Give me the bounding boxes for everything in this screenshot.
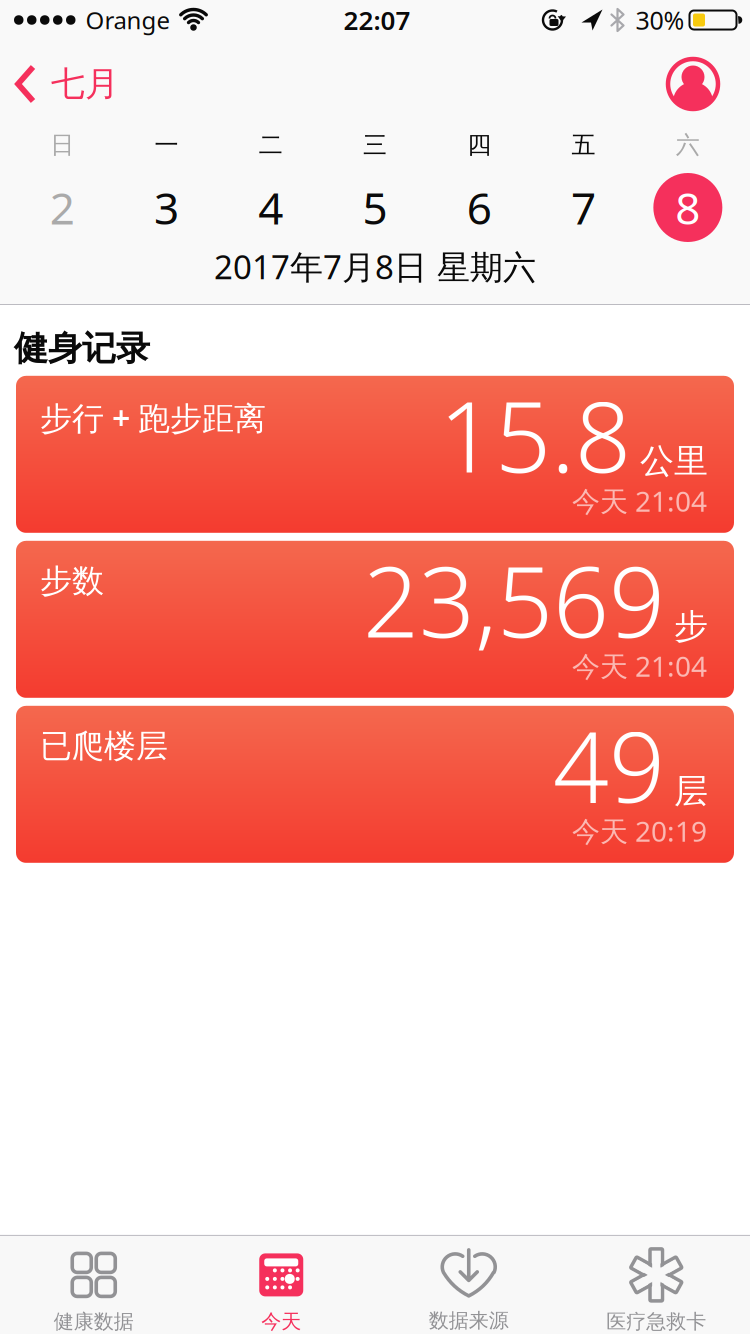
button[interactable]: 4 [219,177,323,237]
staticText: 六 [676,130,700,160]
staticText: 公里 [640,440,708,483]
staticText: 步行 + 跑步距离 [40,396,266,439]
staticText: 医疗急救卡 [606,1309,706,1334]
button[interactable]: 3 [114,177,219,237]
staticText: 6 [467,177,492,237]
staticText: 层 [674,770,708,813]
staticText: 15.8 [439,368,631,501]
button[interactable]: 步数 [16,541,734,698]
staticText: 健康数据 [54,1309,134,1334]
staticText: 23,569 [363,533,665,666]
staticText: 一 [154,130,178,160]
staticText: 22:07 [343,2,410,38]
button[interactable]: 步行 + 跑步距离 [16,376,734,533]
staticText: 2 [50,177,75,237]
button[interactable]: 已爬楼层 [16,706,734,863]
staticText: 今天 21:04 [572,482,707,520]
staticText: 今天 20:19 [572,812,707,850]
staticText: 三 [363,130,387,160]
staticText: 日 [50,130,74,160]
staticText: 2017年7月8日 星期六 [214,244,536,289]
staticText: 今天 [261,1309,301,1334]
button[interactable]: 医疗急救卡 [562,1236,750,1334]
staticText: 数据来源 [429,1308,509,1333]
staticText: 8 [675,177,700,237]
staticText: Orange [85,4,170,36]
button[interactable]: 健康数据 [0,1236,187,1334]
staticText: 5 [362,177,387,237]
staticText: 二 [259,130,283,160]
button[interactable]: 今天 [187,1236,375,1334]
staticText: 30% [635,3,684,37]
button[interactable]: 6 [427,177,531,237]
staticText: 已爬楼层 [40,726,168,766]
staticText: 五 [572,130,596,160]
staticText: 步数 [40,561,104,601]
staticText: 四 [467,130,491,160]
staticText: 7 [571,177,596,237]
staticText: 49 [553,698,665,831]
button[interactable]: 七月 [0,63,119,105]
staticText: 4 [258,177,283,237]
staticText: 今天 21:04 [572,647,707,685]
staticText: 3 [154,177,179,237]
button[interactable]: 数据来源 [375,1237,562,1333]
button[interactable]: 健康资料 [668,59,750,109]
button[interactable]: 2 [10,177,114,237]
staticText: 步 [674,605,708,648]
button[interactable]: 5 [323,177,427,237]
button[interactable]: 8 [636,173,740,242]
staticText: 健身记录 [14,327,150,370]
button[interactable]: 7 [531,177,636,237]
staticText: 七月 [51,63,119,105]
